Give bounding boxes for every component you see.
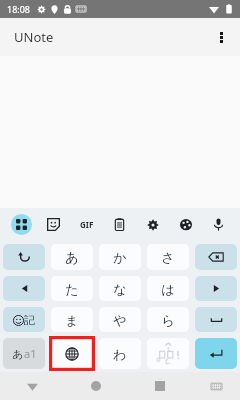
button[interactable]: Space xyxy=(195,307,237,332)
staticText: 18:08 xyxy=(7,3,31,15)
button[interactable]: GIF xyxy=(70,208,103,241)
button[interactable]: わ xyxy=(99,338,141,369)
button[interactable]: は xyxy=(147,276,189,301)
staticText: た xyxy=(65,281,79,297)
staticText: a1 xyxy=(24,346,37,361)
button[interactable]: Clipboard xyxy=(103,208,136,241)
button[interactable]: More options xyxy=(208,24,234,50)
staticText: な xyxy=(113,281,127,297)
button[interactable]: Backspace xyxy=(195,244,237,270)
button[interactable]: Stickers xyxy=(37,208,70,241)
button[interactable]: Recents xyxy=(128,372,192,400)
button[interactable]: Emoji and symbols xyxy=(3,307,45,332)
button[interactable]: Switch language xyxy=(51,338,93,369)
staticText: 記 xyxy=(24,313,35,327)
button[interactable]: ま xyxy=(51,307,93,332)
staticText: あ xyxy=(65,249,79,265)
button[interactable]: Change keyboard xyxy=(192,372,240,400)
button[interactable]: た xyxy=(51,276,93,301)
button[interactable]: ら xyxy=(147,307,189,332)
button[interactable]: Home xyxy=(64,372,128,400)
staticText: GIF xyxy=(80,219,94,230)
button[interactable]: Voice input xyxy=(202,208,235,241)
staticText: さ xyxy=(161,249,175,265)
button[interactable]: や xyxy=(99,307,141,332)
staticText: ら xyxy=(161,312,175,328)
button[interactable]: Cursor right xyxy=(195,276,237,301)
staticText: は xyxy=(161,281,175,297)
staticText: や xyxy=(113,312,127,328)
button[interactable]: Hide keyboard xyxy=(0,372,64,400)
button[interactable]: Themes xyxy=(169,208,202,241)
button[interactable]: さ xyxy=(147,244,189,270)
button[interactable]: Settings xyxy=(136,208,169,241)
staticText: UNote xyxy=(14,28,54,46)
button[interactable]: Undo xyxy=(3,244,45,270)
staticText: わ xyxy=(113,346,127,362)
button[interactable]: Punctuation xyxy=(147,338,189,369)
staticText: か xyxy=(113,249,127,265)
button[interactable]: Input mode xyxy=(3,338,45,369)
button[interactable]: あ xyxy=(51,244,93,270)
button[interactable]: Enter xyxy=(195,338,237,369)
staticText: ま xyxy=(65,312,79,328)
button[interactable]: な xyxy=(99,276,141,301)
button[interactable]: Keyboard modes xyxy=(5,208,37,241)
button[interactable]: か xyxy=(99,244,141,270)
button[interactable]: Cursor left xyxy=(3,276,45,301)
staticText: あ xyxy=(12,347,24,361)
